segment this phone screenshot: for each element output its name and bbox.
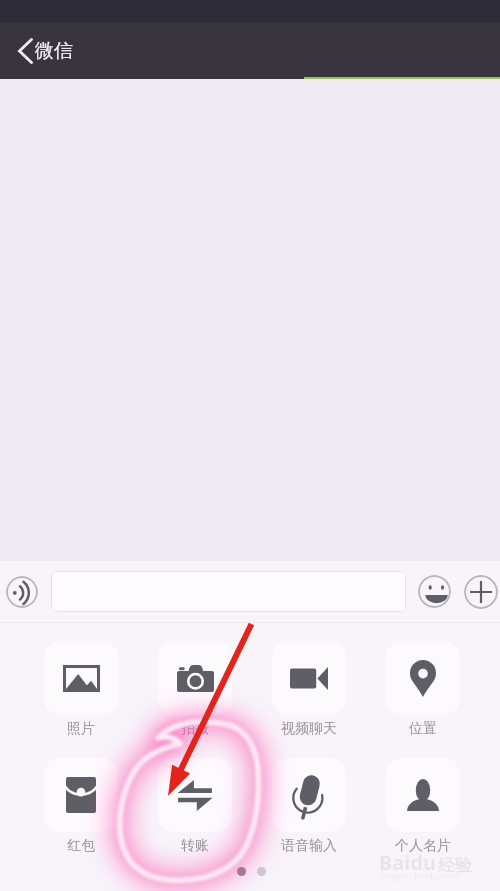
staticText: 视频聊天 — [281, 720, 337, 738]
staticText: 微信 — [35, 39, 73, 63]
staticText: 位置 — [409, 720, 437, 738]
button[interactable]: 视频聊天 — [252, 641, 366, 738]
staticText: 经验 — [438, 855, 472, 876]
staticText: Baidu — [379, 849, 436, 876]
button[interactable]: Emoji — [418, 575, 451, 608]
button[interactable] — [51, 571, 406, 612]
button[interactable]: More options — [464, 575, 498, 609]
staticText: 个人名片 — [395, 837, 451, 855]
staticText: jingyan.baidu.com — [381, 869, 459, 881]
staticText: 拍摄 — [181, 720, 209, 738]
button[interactable]: Voice message — [6, 576, 38, 608]
button[interactable]: Back — [0, 25, 50, 77]
staticText: 转账 — [181, 837, 209, 855]
button[interactable]: 个人名片 — [366, 758, 480, 855]
button[interactable]: 照片 — [24, 641, 138, 738]
staticText: 红包 — [67, 837, 95, 855]
staticText: 照片 — [67, 720, 95, 738]
button[interactable]: 转账 — [138, 758, 252, 855]
button[interactable]: 红包 — [24, 758, 138, 855]
button[interactable]: 位置 — [366, 641, 480, 738]
button[interactable]: 拍摄 — [138, 641, 252, 738]
staticText: 语音输入 — [281, 837, 337, 855]
button[interactable]: 语音输入 — [252, 758, 366, 855]
